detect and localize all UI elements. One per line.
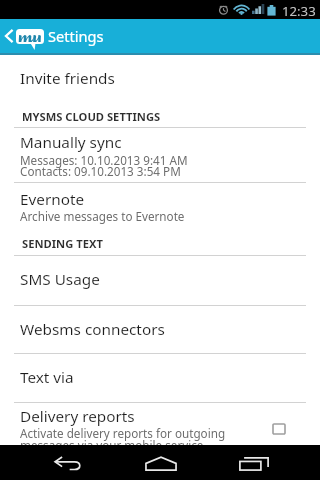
staticText: Messages: 10.10.2013 9:41 AM bbox=[20, 152, 188, 168]
staticText: Archive messages to Evernote bbox=[20, 208, 185, 224]
button[interactable]: Home bbox=[134, 445, 188, 480]
staticText: Invite friends bbox=[20, 68, 115, 89]
button[interactable] bbox=[0, 128, 320, 182]
staticText: SENDING TEXT bbox=[22, 236, 103, 251]
staticText: Text via bbox=[20, 367, 74, 388]
staticText: my bbox=[18, 26, 42, 42]
staticText: messages via your mobile service bbox=[20, 437, 204, 453]
staticText: MYSMS CLOUD SETTINGS bbox=[22, 109, 161, 124]
staticText: SMS Usage bbox=[20, 269, 100, 290]
staticText: Delivery reports bbox=[20, 406, 135, 427]
button[interactable]: Navigate up bbox=[0, 19, 54, 50]
button[interactable]: Delivery reports toggle bbox=[264, 415, 294, 443]
button[interactable] bbox=[0, 256, 320, 305]
staticText: Contacts: 09.10.2013 3:54 PM bbox=[20, 163, 181, 179]
button[interactable]: Recent apps bbox=[188, 445, 320, 480]
staticText: Activate delivery reports for outgoing bbox=[20, 425, 226, 441]
staticText: 12:33 bbox=[282, 2, 316, 20]
button[interactable] bbox=[0, 53, 320, 104]
staticText: Websms connectors bbox=[20, 319, 165, 340]
button[interactable] bbox=[0, 403, 320, 449]
button[interactable]: Back bbox=[0, 445, 134, 480]
button[interactable] bbox=[0, 354, 320, 402]
staticText: Settings bbox=[48, 26, 104, 46]
button[interactable] bbox=[0, 183, 320, 228]
staticText: Evernote bbox=[20, 189, 85, 210]
staticText: Manually sync bbox=[20, 132, 122, 153]
button[interactable] bbox=[0, 306, 320, 353]
